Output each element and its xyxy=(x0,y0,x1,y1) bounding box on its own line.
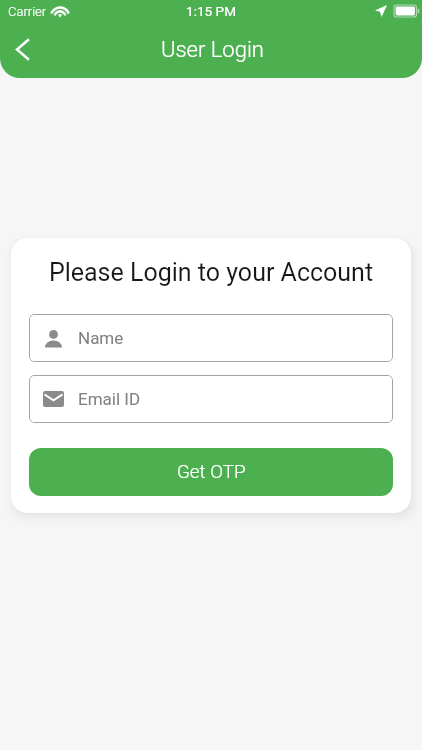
staticText: Please Login to your Account xyxy=(11,258,411,287)
staticText: Carrier xyxy=(8,4,47,19)
staticText: 1:15 PM xyxy=(186,3,237,19)
button[interactable]: Email ID xyxy=(29,375,393,423)
staticText: User Login xyxy=(161,37,264,63)
staticText: Email ID xyxy=(78,389,141,409)
button[interactable]: Back xyxy=(2,29,42,69)
button[interactable]: Name xyxy=(29,314,393,362)
staticText: Get OTP xyxy=(177,461,246,483)
button[interactable]: Get OTP xyxy=(29,448,393,496)
staticText: Name xyxy=(78,328,124,348)
